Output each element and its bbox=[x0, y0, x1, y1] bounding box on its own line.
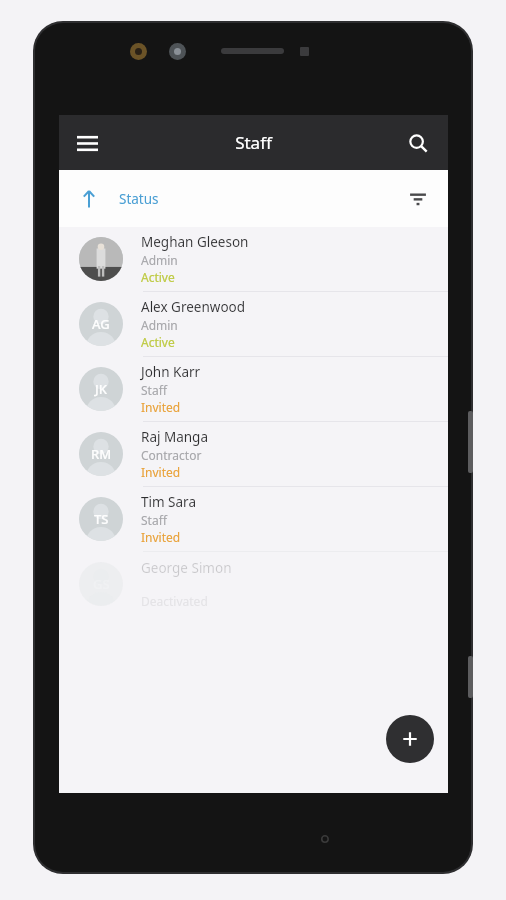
staticText: Staff bbox=[141, 382, 167, 398]
button[interactable]: Search bbox=[396, 121, 440, 165]
staticText: Raj Manga bbox=[141, 428, 209, 446]
staticText: Invited bbox=[141, 529, 181, 545]
button[interactable]: RM bbox=[59, 422, 448, 486]
staticText: George Simon bbox=[141, 559, 232, 577]
staticText: RM bbox=[91, 445, 112, 463]
button[interactable]: Open navigation menu bbox=[65, 121, 109, 165]
staticText: Contractor bbox=[141, 447, 202, 463]
staticText: Staff bbox=[235, 131, 272, 154]
staticText: Active bbox=[141, 334, 175, 350]
button[interactable]: GS bbox=[59, 552, 448, 616]
staticText: Admin bbox=[141, 252, 178, 268]
staticText: Invited bbox=[141, 399, 181, 415]
staticText: TS bbox=[94, 510, 109, 528]
staticText: Meghan Gleeson bbox=[141, 233, 249, 251]
button[interactable]: Meghan Gleeson bbox=[59, 227, 448, 291]
staticText: JK bbox=[95, 380, 107, 398]
button[interactable]: AG bbox=[59, 292, 448, 356]
button[interactable]: Status bbox=[79, 189, 159, 209]
button[interactable]: TS bbox=[59, 487, 448, 551]
staticText: Staff bbox=[141, 512, 167, 528]
staticText: AG bbox=[92, 315, 110, 333]
staticText: Deactivated bbox=[141, 593, 208, 609]
button[interactable]: Filter bbox=[397, 178, 439, 220]
staticText: Status bbox=[119, 190, 159, 208]
staticText: Active bbox=[141, 269, 175, 285]
staticText: Invited bbox=[141, 464, 181, 480]
button[interactable]: JK bbox=[59, 357, 448, 421]
staticText: Tim Sara bbox=[141, 493, 196, 511]
staticText: John Karr bbox=[141, 363, 201, 381]
staticText: Alex Greenwood bbox=[141, 298, 246, 316]
button[interactable]: Add staff member bbox=[386, 715, 434, 763]
staticText: Admin bbox=[141, 317, 178, 333]
